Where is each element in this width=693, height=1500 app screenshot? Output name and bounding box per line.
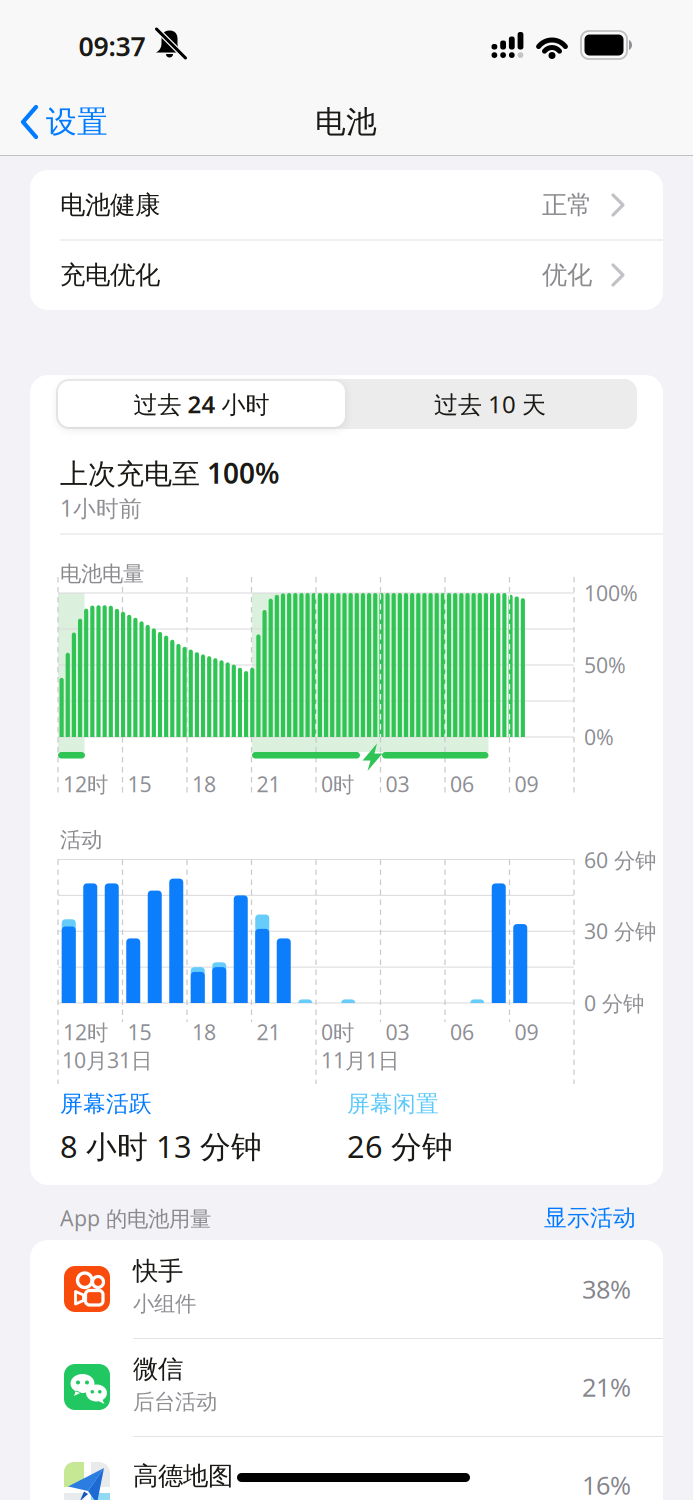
button[interactable]: 过去 24 小时 <box>58 381 345 427</box>
staticText: 设置 <box>46 103 108 141</box>
staticText: 电池 <box>315 103 377 141</box>
staticText: 活动 <box>60 827 102 853</box>
staticText: 上次充电至 100% <box>60 454 280 492</box>
staticText: 电池健康 <box>60 189 160 220</box>
button[interactable]: 设置 <box>20 103 108 141</box>
staticText: 正常 <box>542 189 592 220</box>
staticText: 11月1日 <box>321 1046 399 1074</box>
staticText: 过去 24 小时 <box>133 388 269 420</box>
staticText: 09 <box>514 770 538 798</box>
staticText: 03 <box>385 770 409 798</box>
staticText: 快手 <box>133 1255 183 1286</box>
staticText: 0% <box>584 723 614 751</box>
staticText: 09:37 <box>78 28 145 64</box>
staticText: 后台活动 <box>133 1389 217 1415</box>
staticText: 30 分钟 <box>584 917 656 945</box>
button[interactable]: 微信 <box>30 1338 663 1436</box>
staticText: 微信 <box>133 1353 183 1384</box>
staticText: 15 <box>127 1018 151 1046</box>
staticText: 8 小时 13 分钟 <box>60 1126 262 1166</box>
staticText: 过去 10 天 <box>434 388 546 420</box>
button[interactable]: 显示活动 <box>496 1205 636 1231</box>
staticText: 显示活动 <box>544 1204 636 1232</box>
staticText: 60 分钟 <box>584 846 656 874</box>
button[interactable]: 电池健康 <box>30 170 663 240</box>
staticText: 18 <box>192 770 216 798</box>
staticText: 屏幕活跃 <box>60 1090 152 1118</box>
staticText: App 的电池用量 <box>60 1204 211 1232</box>
button[interactable]: 充电优化 <box>30 240 663 310</box>
staticText: 100% <box>584 579 638 607</box>
button[interactable]: 快手 <box>30 1240 663 1338</box>
staticText: 屏幕闲置 <box>347 1090 439 1118</box>
staticText: 06 <box>450 770 474 798</box>
staticText: 15 <box>127 770 151 798</box>
staticText: 03 <box>385 1018 409 1046</box>
staticText: 12时 <box>63 770 108 798</box>
staticText: 小组件 <box>133 1291 196 1317</box>
staticText: 50% <box>584 651 626 679</box>
staticText: 1小时前 <box>60 493 142 523</box>
staticText: 21 <box>256 1018 280 1046</box>
staticText: 16% <box>582 1468 631 1500</box>
staticText: 高德地图 <box>133 1460 233 1491</box>
button[interactable]: 过去 10 天 <box>345 381 635 427</box>
staticText: 0 分钟 <box>584 989 644 1017</box>
staticText: 12时 <box>63 1018 108 1046</box>
staticText: 电池电量 <box>60 561 144 587</box>
staticText: 26 分钟 <box>347 1126 453 1166</box>
staticText: 09 <box>514 1018 538 1046</box>
staticText: 0时 <box>321 1018 354 1046</box>
staticText: 38% <box>582 1272 631 1306</box>
staticText: 0时 <box>321 770 354 798</box>
button[interactable]: 高德地图 <box>30 1436 663 1500</box>
staticText: 充电优化 <box>60 259 160 290</box>
staticText: 21 <box>256 770 280 798</box>
staticText: 10月31日 <box>62 1046 152 1074</box>
staticText: 18 <box>192 1018 216 1046</box>
staticText: 优化 <box>542 259 592 290</box>
staticText: 21% <box>582 1370 631 1404</box>
staticText: 06 <box>450 1018 474 1046</box>
